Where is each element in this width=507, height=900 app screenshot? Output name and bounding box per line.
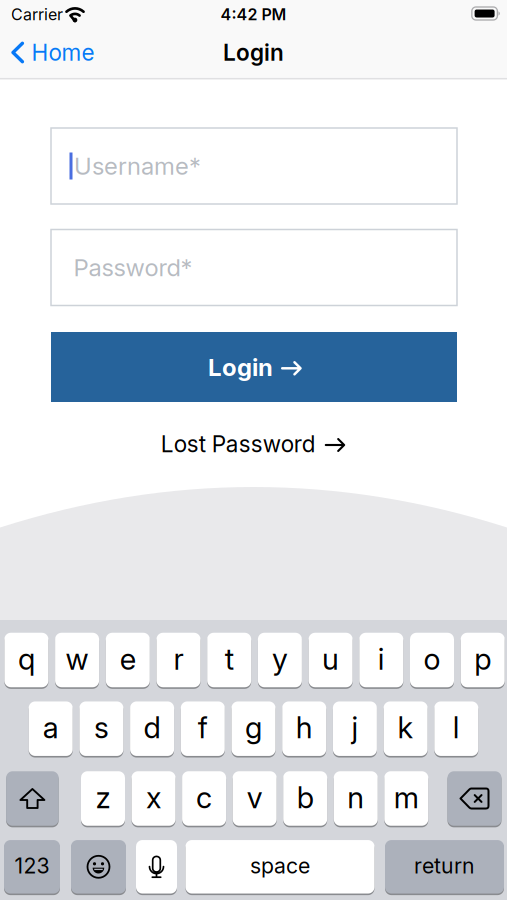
staticText: e xyxy=(120,642,136,676)
button[interactable]: g xyxy=(231,700,275,757)
staticText: t xyxy=(225,642,234,676)
button[interactable]: p xyxy=(461,631,505,689)
staticText: v xyxy=(247,780,263,815)
button[interactable]: return xyxy=(385,838,504,895)
staticText: y xyxy=(272,642,288,676)
staticText: z xyxy=(95,780,110,815)
button[interactable]: t xyxy=(207,631,251,689)
staticText: l xyxy=(453,710,460,745)
staticText: a xyxy=(43,710,59,745)
staticText: w xyxy=(66,642,89,676)
button[interactable]: y xyxy=(258,631,302,689)
staticText: u xyxy=(322,642,339,676)
staticText: n xyxy=(347,780,364,815)
staticText: Home xyxy=(31,39,94,66)
staticText: Login xyxy=(208,353,273,381)
button[interactable]: i xyxy=(359,631,403,689)
button[interactable]: o xyxy=(410,631,454,689)
button[interactable]: e xyxy=(106,631,150,689)
staticText: g xyxy=(245,710,262,745)
staticText: s xyxy=(94,710,109,745)
staticText: r xyxy=(173,642,183,676)
staticText: Username* xyxy=(74,152,201,180)
button[interactable]: h xyxy=(282,700,326,757)
staticText: p xyxy=(474,642,491,676)
button[interactable]: Emoji xyxy=(71,838,126,895)
staticText: b xyxy=(297,780,314,815)
button[interactable]: Shift xyxy=(6,770,59,827)
button[interactable]: a xyxy=(29,700,73,757)
button[interactable]: space xyxy=(185,838,374,895)
staticText: o xyxy=(423,642,440,676)
staticText: i xyxy=(378,642,385,676)
staticText: q xyxy=(18,642,35,676)
button[interactable]: Back to Home xyxy=(11,39,94,66)
staticText: m xyxy=(394,780,419,815)
button[interactable]: v xyxy=(233,770,277,827)
staticText: Login xyxy=(223,39,284,66)
button[interactable]: x xyxy=(132,770,176,827)
button[interactable]: c xyxy=(182,770,226,827)
button[interactable]: w xyxy=(55,631,99,689)
staticText: j xyxy=(351,710,358,745)
button[interactable]: Delete xyxy=(447,770,501,827)
button[interactable]: n xyxy=(334,770,378,827)
button[interactable]: s xyxy=(79,700,123,757)
staticText: Password* xyxy=(73,253,192,282)
staticText: 123 xyxy=(14,853,49,878)
button[interactable]: f xyxy=(181,700,225,757)
button[interactable]: Dictate xyxy=(136,838,177,895)
button[interactable]: q xyxy=(4,631,48,689)
button[interactable]: d xyxy=(130,700,174,757)
staticText: 4:42 PM xyxy=(220,5,286,24)
button[interactable]: Username xyxy=(51,128,457,204)
staticText: h xyxy=(296,710,313,745)
staticText: space xyxy=(250,853,310,878)
button[interactable]: b xyxy=(283,770,327,827)
staticText: Lost Password xyxy=(161,431,316,457)
button[interactable]: Password xyxy=(51,229,457,305)
button[interactable]: Login xyxy=(51,332,457,402)
staticText: f xyxy=(198,710,208,745)
button[interactable]: z xyxy=(81,770,125,827)
staticText: Carrier xyxy=(11,5,63,24)
button[interactable]: j xyxy=(333,700,377,757)
staticText: c xyxy=(196,780,212,815)
staticText: d xyxy=(144,710,161,745)
button[interactable]: m xyxy=(384,770,428,827)
staticText: return xyxy=(414,853,475,878)
staticText: k xyxy=(398,710,414,745)
button[interactable]: k xyxy=(384,700,428,757)
button[interactable]: u xyxy=(309,631,353,689)
button[interactable]: 123 xyxy=(4,838,60,895)
button[interactable]: Lost Password xyxy=(161,431,346,457)
staticText: x xyxy=(146,780,161,815)
button[interactable]: l xyxy=(434,700,478,757)
button[interactable]: r xyxy=(156,631,200,689)
